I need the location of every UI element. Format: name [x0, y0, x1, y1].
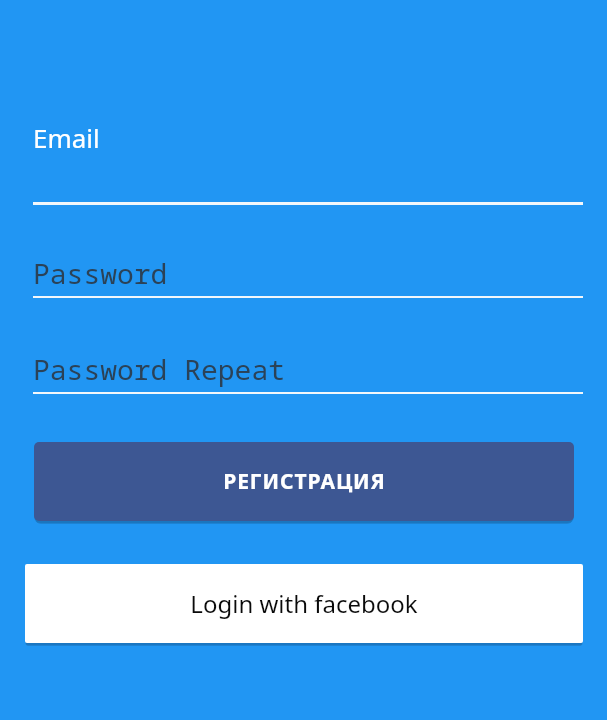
staticText: Password Repeat [33, 350, 286, 388]
button[interactable]: РЕГИСТРАЦИЯ [34, 442, 574, 521]
button[interactable]: Password Repeat [33, 348, 583, 394]
staticText: Email [33, 120, 100, 155]
staticText: РЕГИСТРАЦИЯ [223, 467, 386, 496]
staticText: Login with facebook [190, 587, 418, 620]
button[interactable]: Login with facebook [25, 564, 583, 643]
staticText: Password [33, 254, 168, 292]
button[interactable]: Email [33, 114, 583, 206]
button[interactable]: Password [33, 252, 583, 298]
